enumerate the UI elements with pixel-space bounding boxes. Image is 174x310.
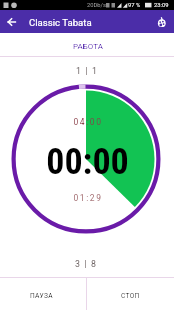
staticText: 97 %	[128, 2, 141, 9]
staticText: РАБОТА	[73, 42, 103, 51]
staticText: 01:29	[73, 193, 103, 203]
button[interactable]	[151, 10, 174, 33]
staticText: Classic Tabata	[29, 17, 92, 28]
staticText: 1 | 1	[76, 66, 98, 76]
button[interactable]: СТОП	[87, 278, 174, 310]
button[interactable]	[0, 10, 24, 33]
staticText: 04:00	[73, 117, 103, 127]
staticText: 3 | 8	[75, 259, 97, 269]
staticText: 20Db/s	[87, 2, 106, 9]
button[interactable]: ПАУЗА	[0, 278, 86, 310]
staticText: СТОП	[121, 292, 140, 300]
staticText: 23:09	[154, 2, 169, 9]
staticText: 00:00	[46, 141, 129, 183]
staticText: ПАУЗА	[30, 292, 53, 300]
